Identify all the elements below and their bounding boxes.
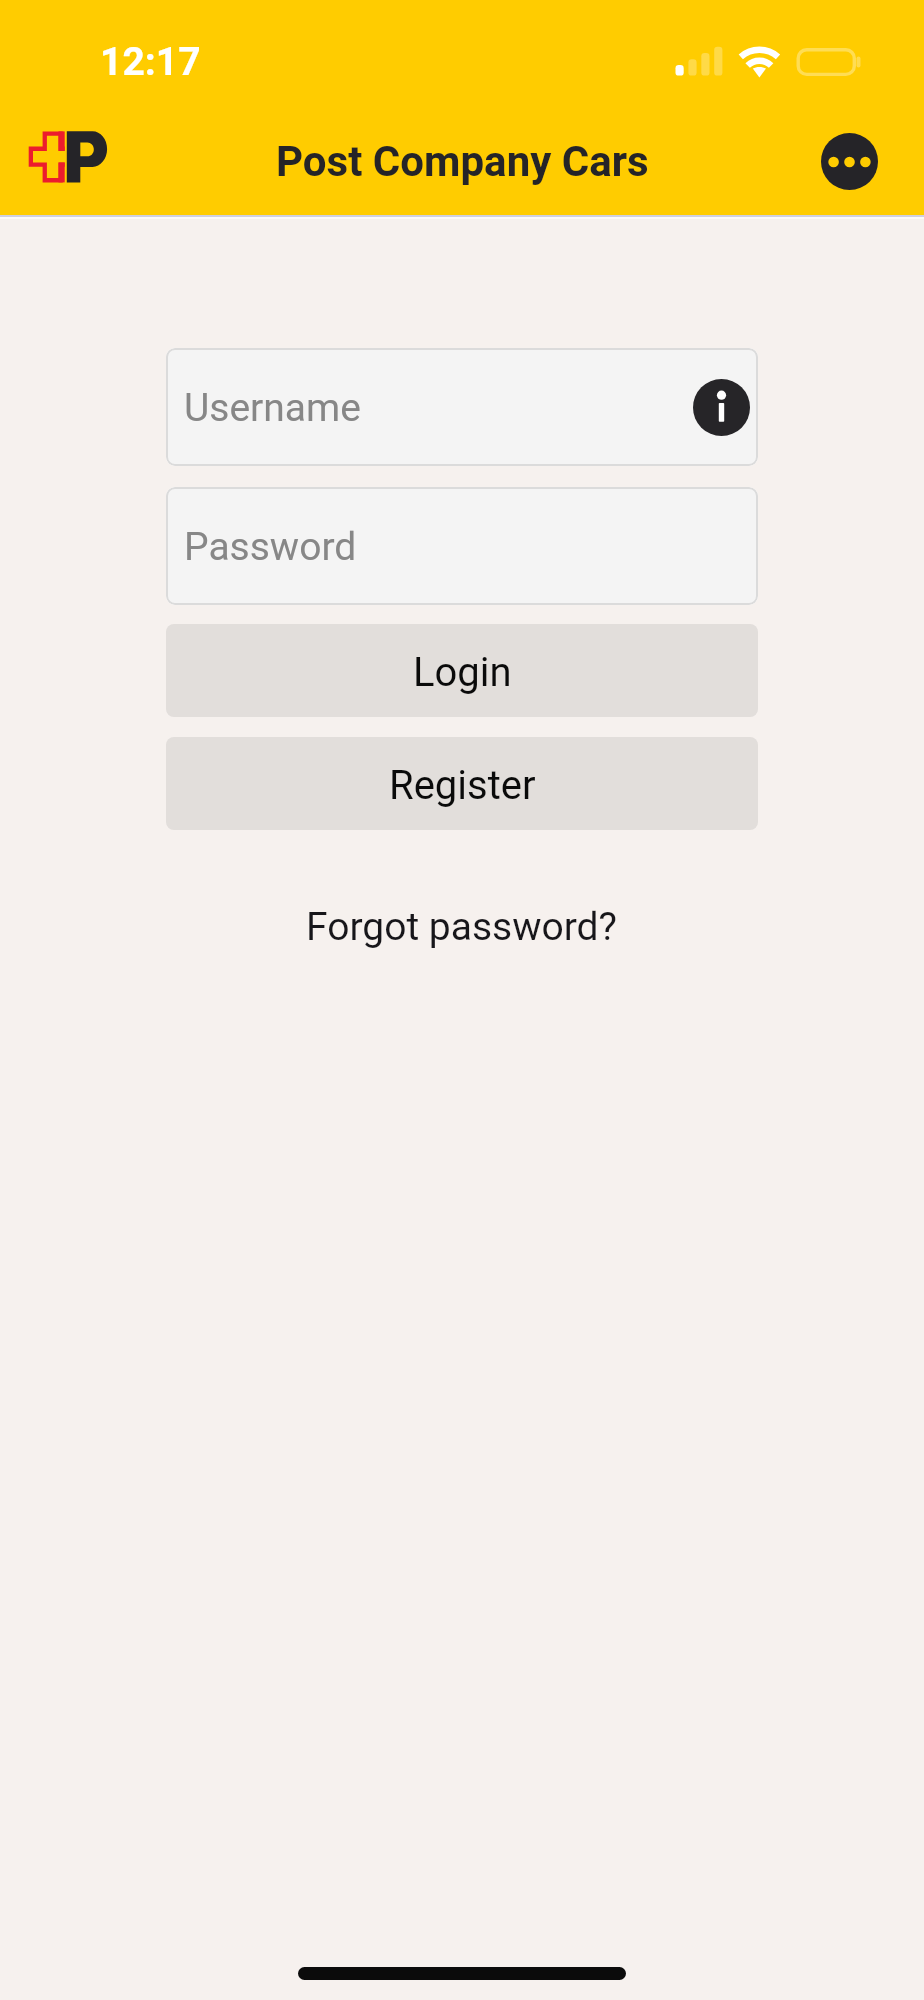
staticText: Post Company Cars	[276, 137, 649, 186]
button[interactable]: Password	[166, 487, 758, 605]
button[interactable]: Forgot password?	[288, 895, 636, 959]
button[interactable]: Info	[693, 379, 750, 436]
staticText: Password	[184, 524, 357, 570]
staticText: Forgot password?	[306, 904, 618, 950]
staticText: Login	[413, 649, 512, 696]
staticText: 12:17	[100, 39, 201, 85]
button[interactable]: Login	[166, 624, 758, 717]
button[interactable]: Swiss Post	[8, 110, 128, 204]
staticText: Username	[184, 385, 361, 431]
staticText: Register	[389, 762, 536, 809]
button[interactable]: Register	[166, 737, 758, 830]
button[interactable]: More options	[821, 133, 878, 190]
button[interactable]: Username	[166, 348, 758, 466]
